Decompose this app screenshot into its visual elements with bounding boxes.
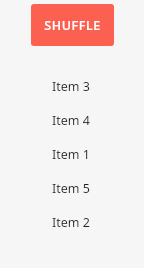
staticText: Item 2	[52, 214, 90, 231]
staticText: Item 3	[52, 78, 90, 95]
button[interactable]: Item 5	[0, 171, 144, 205]
button[interactable]: Item 4	[0, 103, 144, 137]
staticText: SHUFFLE	[44, 17, 101, 34]
button[interactable]: Item 1	[0, 137, 144, 171]
staticText: Item 1	[52, 146, 90, 163]
staticText: Item 4	[52, 112, 90, 129]
button[interactable]: Item 2	[0, 205, 144, 239]
button[interactable]: Item 3	[0, 69, 144, 103]
button[interactable]: SHUFFLE	[31, 4, 114, 46]
staticText: Item 5	[52, 180, 90, 197]
